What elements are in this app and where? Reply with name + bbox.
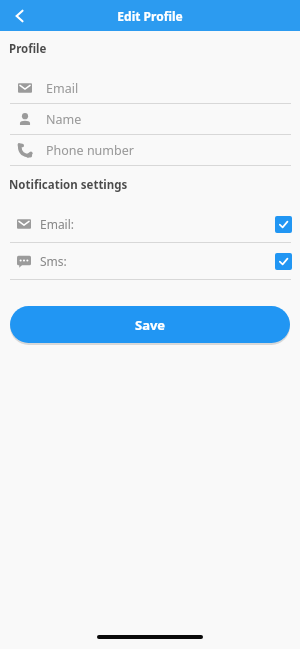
button[interactable]: Toggle Email: [275, 216, 292, 233]
button[interactable]: Email: [0, 206, 300, 242]
staticText: Email: [40, 216, 75, 232]
staticText: Save [135, 316, 166, 334]
staticText: Name [46, 111, 82, 128]
staticText: Profile [9, 41, 47, 57]
staticText: Email [46, 80, 79, 97]
button[interactable]: Save [10, 306, 290, 343]
staticText: Phone number [46, 142, 134, 159]
button[interactable]: Sms: [0, 243, 300, 279]
button[interactable]: Toggle Sms: [275, 253, 292, 270]
button[interactable]: Back [0, 0, 40, 31]
staticText: Notification settings [9, 177, 128, 193]
button[interactable]: Phone number [0, 135, 300, 165]
button[interactable]: Name [0, 104, 300, 134]
button[interactable]: Email [0, 73, 300, 103]
staticText: Edit Profile [117, 8, 183, 24]
staticText: Sms: [40, 253, 67, 269]
